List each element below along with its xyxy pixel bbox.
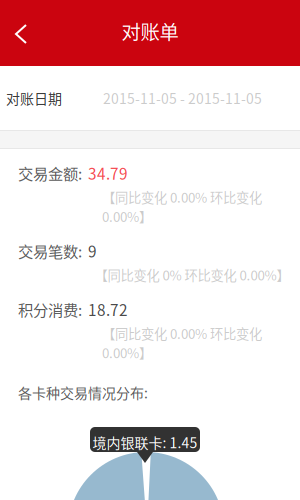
staticText: 【同比变化 0.00% 环比变化 0.00%】 — [102, 187, 262, 226]
staticText: 对账日期 — [6, 88, 62, 108]
button[interactable]: Back — [0, 0, 42, 66]
staticText: 境内银联卡: 1.45 — [92, 432, 197, 452]
staticText: 9 — [88, 240, 97, 262]
staticText: 2015-11-05 - 2015-11-05 — [103, 88, 262, 108]
staticText: 18.72 — [88, 298, 128, 320]
staticText: 【同比变化 0.00% 环比变化 0.00%】 — [102, 323, 262, 362]
staticText: 各卡种交易情况分布: — [18, 382, 148, 402]
staticText: 【同比变化 0% 环比变化 0.00%】 — [94, 265, 289, 284]
staticText: 交易笔数: — [18, 240, 82, 262]
staticText: 34.79 — [88, 162, 128, 184]
staticText: 交易金额: — [18, 162, 82, 184]
staticText: 积分消费: — [18, 298, 82, 320]
staticText: 对账单 — [121, 17, 178, 45]
